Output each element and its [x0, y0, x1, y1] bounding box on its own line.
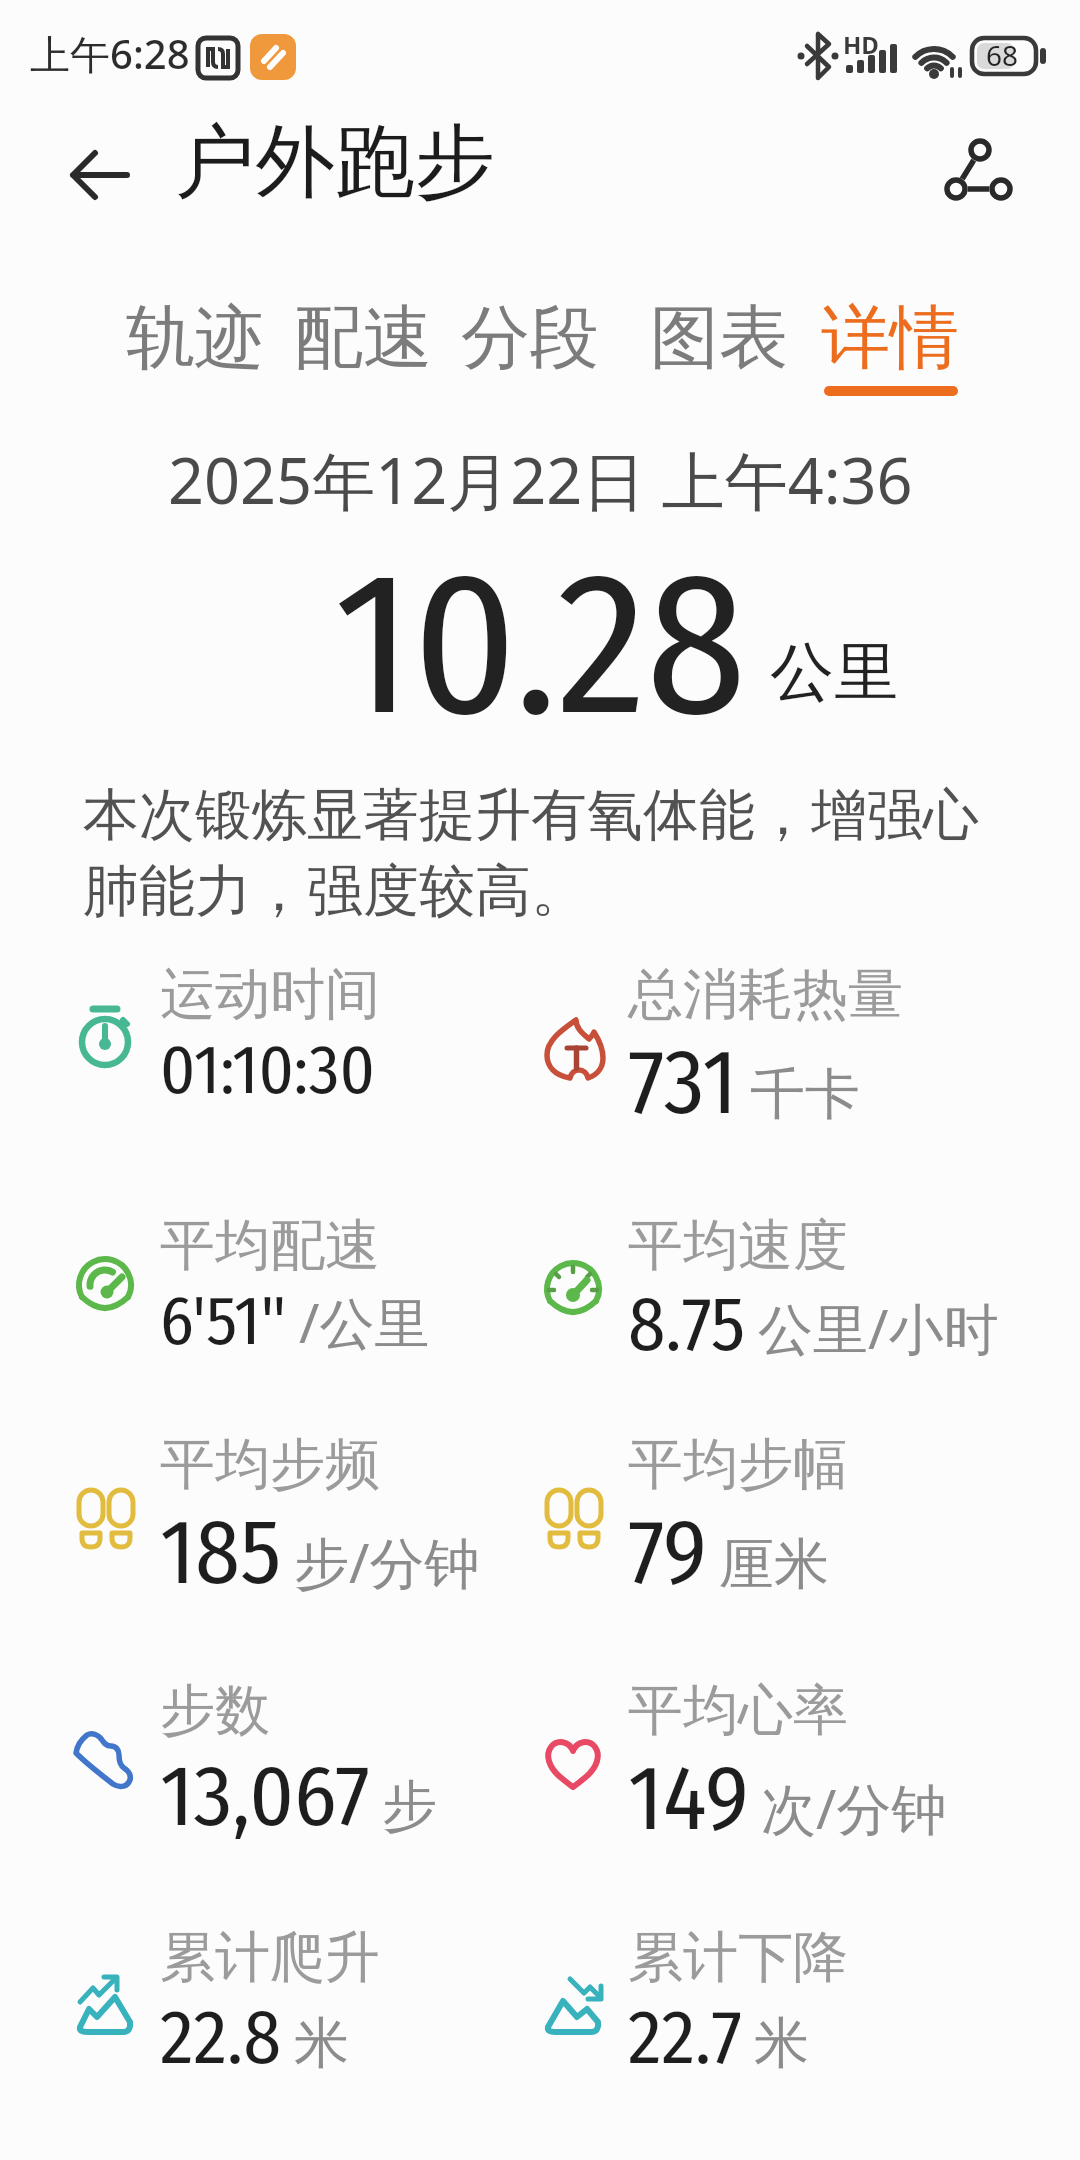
- staticText: 22.8: [160, 1992, 282, 2083]
- staticText: 6'51": [160, 1280, 287, 1362]
- staticText: 平均步幅: [628, 1430, 848, 1499]
- button[interactable]: [920, 115, 1030, 225]
- staticText: 10.28: [334, 524, 747, 765]
- staticText: 步: [382, 1772, 437, 1841]
- staticText: 次/分钟: [761, 1770, 947, 1845]
- staticText: 米: [294, 2009, 349, 2078]
- staticText: 运动时间: [160, 960, 380, 1029]
- button[interactable]: 分段: [461, 295, 599, 382]
- staticText: 步数: [160, 1676, 270, 1745]
- staticText: 22.7: [628, 1992, 742, 2083]
- staticText: 13,067: [160, 1745, 370, 1848]
- staticText: 平均速度: [628, 1211, 848, 1280]
- staticText: 公里: [770, 632, 898, 713]
- staticText: 米: [754, 2009, 809, 2078]
- staticText: 731: [628, 1029, 738, 1137]
- staticText: HD: [843, 28, 879, 61]
- staticText: 01:10:30: [160, 1029, 375, 1111]
- button[interactable]: 图表: [650, 295, 788, 382]
- staticText: 2025年12月22日 上午4:36: [168, 437, 913, 523]
- staticText: 步/分钟: [294, 1524, 480, 1599]
- staticText: 79: [628, 1499, 707, 1607]
- staticText: 累计下降: [628, 1923, 848, 1992]
- staticText: 本次锻炼显著提升有氧体能，增强心: [83, 780, 979, 851]
- staticText: 轨迹: [126, 295, 264, 382]
- staticText: 平均心率: [628, 1676, 848, 1745]
- staticText: 公里/小时: [758, 1290, 999, 1365]
- button[interactable]: 详情: [821, 295, 959, 382]
- staticText: 图表: [650, 295, 788, 382]
- staticText: 千卡: [750, 1060, 860, 1129]
- staticText: 总消耗热量: [628, 960, 903, 1029]
- staticText: 配速: [294, 295, 432, 382]
- staticText: 149: [628, 1745, 749, 1853]
- staticText: 平均步频: [160, 1430, 380, 1499]
- staticText: 厘米: [719, 1530, 829, 1599]
- button[interactable]: [55, 130, 145, 220]
- staticText: 185: [160, 1499, 282, 1607]
- staticText: 68: [986, 36, 1019, 74]
- staticText: 详情: [821, 295, 959, 382]
- staticText: 8.75: [628, 1280, 746, 1370]
- staticText: 上午6:28: [30, 26, 190, 81]
- staticText: 户外跑步: [175, 112, 495, 213]
- button[interactable]: 配速: [294, 295, 432, 382]
- button[interactable]: 轨迹: [126, 295, 264, 382]
- staticText: 平均配速: [160, 1211, 380, 1280]
- staticText: 肺能力，强度较高。: [83, 856, 587, 927]
- staticText: 累计爬升: [160, 1923, 380, 1992]
- staticText: 分段: [461, 295, 599, 382]
- staticText: /公里: [299, 1284, 430, 1359]
